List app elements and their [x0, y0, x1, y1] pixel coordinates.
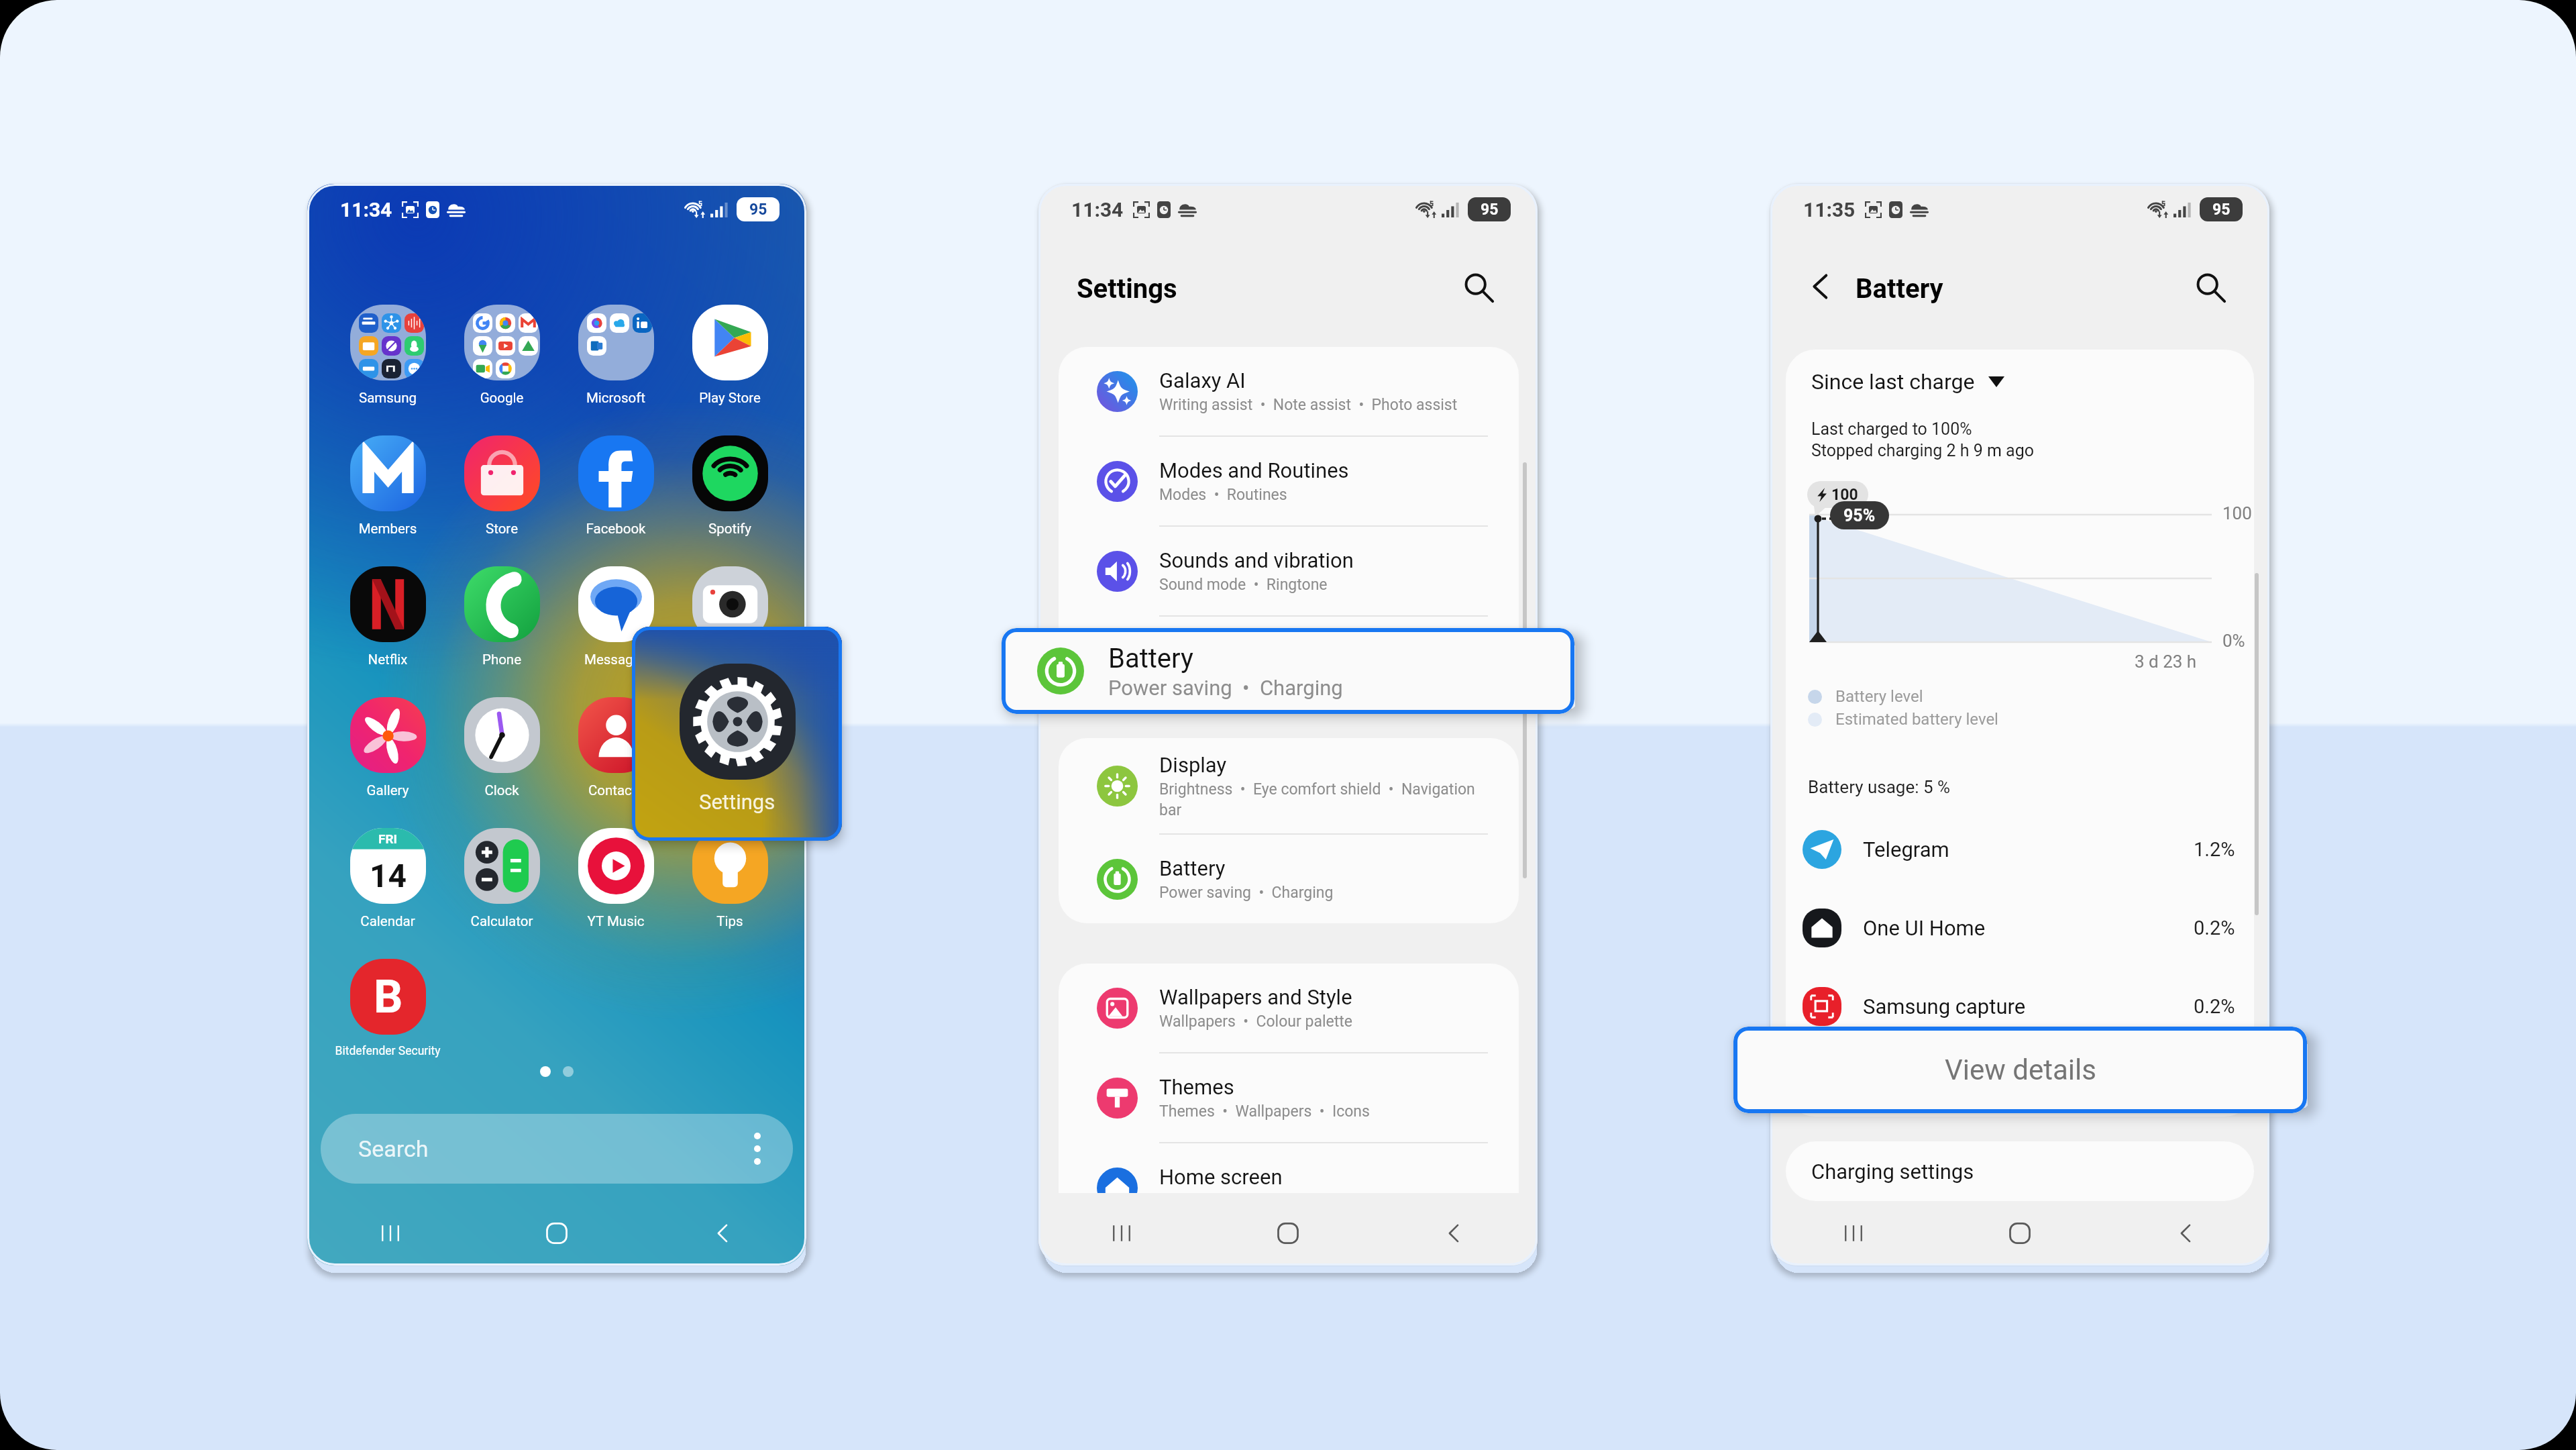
staticText: Settings: [1077, 273, 1177, 305]
button[interactable]: Google: [445, 305, 559, 406]
staticText: 95: [749, 201, 767, 219]
staticText: Bitdefender Security: [331, 1044, 445, 1058]
staticText: Google: [445, 390, 559, 406]
button[interactable]: Search: [1454, 263, 1503, 311]
button[interactable]: Microsoft: [559, 305, 673, 406]
staticText: Notification pop-up style: [1159, 666, 1488, 684]
staticText: Stopped charging 2 h 9 m ago: [1811, 441, 2035, 460]
staticText: Last charged to 100%: [1811, 419, 1972, 439]
staticText: Members: [331, 521, 445, 537]
staticText: Microsoft: [559, 390, 673, 406]
button[interactable]: Settings: [673, 697, 787, 798]
button[interactable]: YT Music: [559, 828, 673, 929]
staticText: Wallpapers • Colour palette: [1159, 1013, 1488, 1031]
button[interactable]: Recents: [1770, 1206, 1937, 1261]
button[interactable]: Search: [2186, 263, 2235, 311]
staticText: 0.2%: [2194, 917, 2235, 939]
staticText: Tips: [673, 913, 787, 929]
button[interactable]: Notifications: [1059, 617, 1519, 705]
staticText: Charging settings: [1811, 1159, 1974, 1184]
button[interactable]: Samsung capture: [1803, 970, 2235, 1043]
button[interactable]: Search: [321, 1114, 793, 1184]
button[interactable]: One UI Home: [1803, 891, 2235, 965]
button[interactable]: Home: [1937, 1206, 2103, 1261]
staticText: Facebook: [559, 521, 673, 537]
button[interactable]: Back: [1799, 264, 1843, 309]
button[interactable]: B: [331, 959, 445, 1058]
staticText: Samsung: [331, 390, 445, 406]
button[interactable]: FRI: [331, 828, 445, 929]
button[interactable]: Camera: [673, 566, 787, 668]
staticText: Calendar: [331, 913, 445, 929]
staticText: Battery: [1856, 273, 1943, 305]
button[interactable]: Clock: [445, 697, 559, 798]
staticText: Themes • Wallpapers • Icons: [1159, 1102, 1488, 1121]
staticText: 11:34: [1071, 198, 1124, 221]
button[interactable]: Battery: [1002, 628, 1574, 714]
button[interactable]: Store: [445, 435, 559, 537]
button[interactable]: Since last charge: [1811, 369, 2004, 395]
staticText: Phone: [445, 652, 559, 668]
staticText: Camera: [673, 652, 787, 668]
button[interactable]: Modes and Routines: [1059, 437, 1519, 525]
staticText: Notifications: [1159, 638, 1278, 662]
button[interactable]: Home screen: [1059, 1143, 1519, 1232]
button[interactable]: Calculator: [445, 828, 559, 929]
staticText: Store: [445, 521, 559, 537]
button[interactable]: Facebook: [559, 435, 673, 537]
staticText: Telegram: [1863, 837, 1949, 862]
button[interactable]: Tips: [673, 828, 787, 929]
staticText: Home screen: [1159, 1165, 1283, 1189]
staticText: Display: [1159, 753, 1227, 777]
button[interactable]: Galaxy AI: [1059, 347, 1519, 435]
staticText: Settings: [699, 790, 775, 814]
button[interactable]: Home: [1205, 1206, 1371, 1261]
staticText: 11:35: [1803, 198, 1856, 221]
staticText: Wallpapers and Style: [1159, 985, 1352, 1009]
button[interactable]: Back: [640, 1206, 806, 1261]
button[interactable]: Wallpapers and Style: [1059, 964, 1519, 1052]
button[interactable]: Spotify: [673, 435, 787, 537]
button[interactable]: Charging settings: [1786, 1141, 2254, 1201]
button[interactable]: Display: [1059, 738, 1519, 833]
button[interactable]: Home: [474, 1206, 640, 1261]
button[interactable]: Back: [1371, 1206, 1538, 1261]
staticText: B: [374, 970, 403, 1024]
staticText: 95: [1481, 201, 1499, 219]
button[interactable]: Recents: [1038, 1206, 1205, 1261]
staticText: 100: [1831, 486, 1858, 504]
button[interactable]: Members: [331, 435, 445, 537]
staticText: Sounds and vibration: [1159, 548, 1354, 572]
staticText: Power saving • Charging: [1108, 676, 1343, 700]
button[interactable]: Battery: [1059, 835, 1519, 923]
staticText: Estimated battery level: [1835, 710, 1998, 729]
button[interactable]: Recents: [307, 1206, 474, 1261]
staticText: 3 d 23 h: [2135, 652, 2197, 672]
button[interactable]: Contacts: [559, 697, 673, 798]
staticText: Contacts: [559, 782, 673, 798]
button[interactable]: Sounds and vibration: [1059, 527, 1519, 615]
staticText: View details: [1945, 1053, 2096, 1086]
staticText: 100: [2222, 503, 2252, 523]
staticText: Sound mode • Ringtone: [1159, 576, 1488, 594]
button[interactable]: Samsung: [331, 305, 445, 406]
button[interactable]: Telegram: [1803, 813, 2235, 886]
staticText: 14: [370, 857, 407, 894]
button[interactable]: Themes: [1059, 1053, 1519, 1142]
button[interactable]: Phone: [445, 566, 559, 668]
button[interactable]: Back: [2103, 1206, 2269, 1261]
staticText: Spotify: [673, 521, 787, 537]
staticText: One UI Home: [1863, 916, 1986, 940]
staticText: Modes • Routines: [1159, 486, 1488, 504]
staticText: Samsung capture: [1863, 994, 2026, 1019]
staticText: YT Music: [559, 913, 673, 929]
button[interactable]: View details: [1733, 1027, 2307, 1113]
staticText: Clock: [445, 782, 559, 798]
staticText: Search: [358, 1135, 429, 1162]
button[interactable]: Settings app: [632, 627, 842, 841]
staticText: Play Store: [673, 390, 787, 406]
button[interactable]: Gallery: [331, 697, 445, 798]
button[interactable]: Play Store: [673, 305, 787, 406]
button[interactable]: Messages: [559, 566, 673, 668]
button[interactable]: Netflix: [331, 566, 445, 668]
